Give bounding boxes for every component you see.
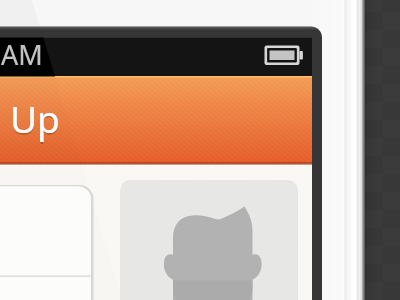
staticText: Up [10, 95, 60, 145]
button[interactable]: Battery status [260, 42, 306, 68]
button[interactable]: Up [0, 88, 160, 148]
staticText: AM [1, 36, 43, 68]
button[interactable]: Clock [0, 38, 44, 70]
staticText: Up [10, 93, 60, 143]
